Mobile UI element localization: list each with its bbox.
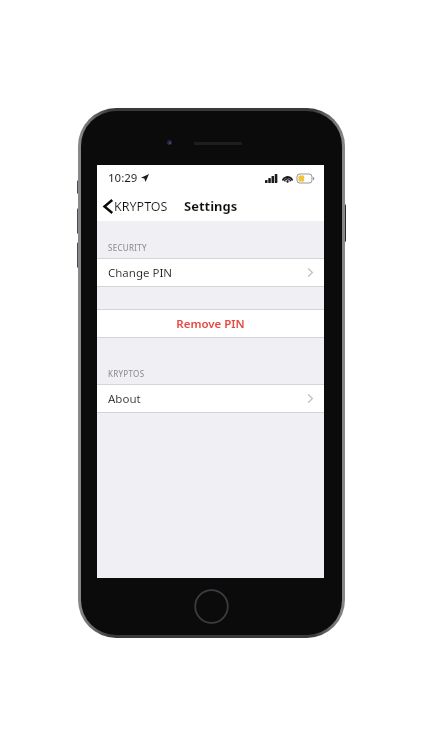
button[interactable]: About: [97, 385, 324, 412]
button[interactable]: KRYPTOS: [97, 194, 176, 219]
staticText: SECURITY: [108, 242, 147, 253]
button[interactable]: Change PIN: [97, 259, 324, 286]
staticText: KRYPTOS: [108, 368, 145, 379]
button[interactable]: Remove PIN: [97, 310, 324, 337]
staticText: About: [108, 391, 141, 407]
staticText: KRYPTOS: [114, 198, 168, 215]
staticText: Settings: [184, 197, 238, 215]
staticText: Remove PIN: [176, 316, 245, 332]
staticText: Change PIN: [108, 265, 173, 281]
staticText: 10:29: [108, 170, 138, 186]
button[interactable]: Home: [194, 589, 229, 624]
